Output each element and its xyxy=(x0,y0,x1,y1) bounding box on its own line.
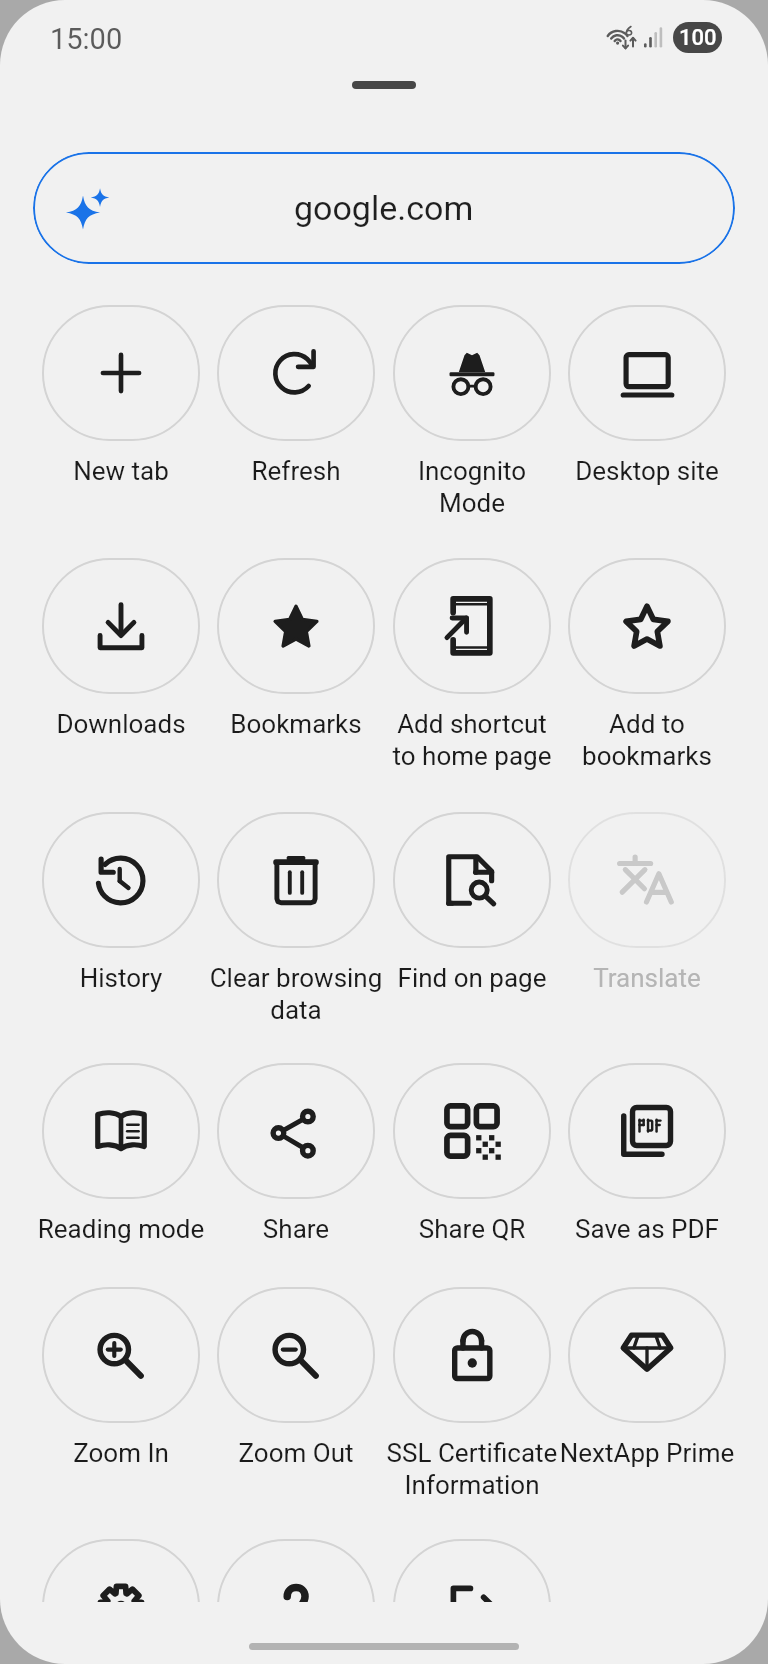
button[interactable]: Add shortcut to home page xyxy=(384,558,559,771)
button[interactable]: New tab xyxy=(33,305,208,486)
staticText: Share QR xyxy=(379,1214,565,1244)
staticText: Incognito Mode xyxy=(379,456,565,518)
staticText: Zoom Out xyxy=(203,1438,389,1468)
other: AI assistant xyxy=(69,180,125,236)
staticText: Translate xyxy=(554,963,740,993)
staticText: Share xyxy=(203,1214,389,1244)
button[interactable]: Save as PDF xyxy=(559,1063,734,1244)
staticText: Add shortcut to home page xyxy=(379,709,565,771)
button[interactable]: Exit xyxy=(384,1539,559,1602)
button[interactable]: Zoom Out xyxy=(208,1287,383,1468)
staticText: google.com xyxy=(294,188,474,228)
staticText: Desktop site xyxy=(554,456,740,486)
button[interactable]: Help xyxy=(208,1539,383,1602)
staticText: Add to bookmarks xyxy=(554,709,740,771)
button[interactable]: Downloads xyxy=(33,558,208,739)
staticText: Save as PDF xyxy=(554,1214,740,1244)
staticText: Refresh xyxy=(203,456,389,486)
staticText: History xyxy=(28,963,214,993)
staticText: Bookmarks xyxy=(203,709,389,739)
button[interactable]: Desktop site xyxy=(559,305,734,486)
button[interactable]: Translate xyxy=(559,812,734,993)
staticText: Zoom In xyxy=(28,1438,214,1468)
button[interactable]: SSL Certificate Information xyxy=(384,1287,559,1500)
staticText: NextApp Prime xyxy=(554,1438,740,1468)
button[interactable]: Clear browsing data xyxy=(208,812,383,1025)
staticText: Reading mode xyxy=(28,1214,214,1244)
staticText: 15:00 xyxy=(50,22,123,56)
staticText: Find on page xyxy=(379,963,565,993)
button[interactable]: Refresh xyxy=(208,305,383,486)
button[interactable]: Share xyxy=(208,1063,383,1244)
button[interactable]: Share QR xyxy=(384,1063,559,1244)
staticText: SSL Certificate Information xyxy=(379,1438,565,1500)
button[interactable]: Add to bookmarks xyxy=(559,558,734,771)
staticText: 100 xyxy=(679,25,717,51)
button[interactable]: Bookmarks xyxy=(208,558,383,739)
button[interactable]: Zoom In xyxy=(33,1287,208,1468)
button[interactable]: Find on page xyxy=(384,812,559,993)
staticText: Downloads xyxy=(28,709,214,739)
button[interactable]: History xyxy=(33,812,208,993)
button[interactable]: NextApp Prime xyxy=(559,1287,734,1468)
staticText: New tab xyxy=(28,456,214,486)
button[interactable]: Settings xyxy=(33,1539,208,1602)
button[interactable]: Incognito Mode xyxy=(384,305,559,518)
button[interactable]: AI assistant xyxy=(33,152,735,264)
staticText: Clear browsing data xyxy=(203,963,389,1025)
button[interactable]: Reading mode xyxy=(33,1063,208,1244)
